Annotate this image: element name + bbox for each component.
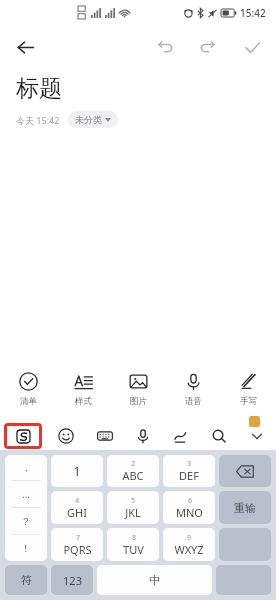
staticText: 符 [21, 573, 32, 587]
staticText: 重输 [234, 501, 256, 515]
staticText: ？ [21, 515, 31, 528]
button[interactable] [216, 565, 271, 595]
staticText: 9 [187, 533, 191, 542]
staticText: 6 [188, 496, 192, 505]
staticText: TUV [123, 542, 144, 557]
button[interactable]: 123 [51, 565, 93, 595]
button[interactable]: … [5, 481, 47, 507]
button[interactable]: 中 [97, 565, 212, 595]
staticText: 8 [132, 533, 136, 542]
button[interactable]: 6 [163, 491, 215, 524]
button[interactable]: 未分类 [68, 111, 118, 128]
button[interactable]: Keyboard layout [85, 422, 124, 450]
button[interactable]: 语音 [166, 362, 221, 416]
button[interactable]: Handwriting [162, 422, 200, 450]
button[interactable]: Undo [148, 31, 180, 63]
staticText: 语音 [185, 396, 202, 407]
button[interactable]: 7 [51, 528, 103, 561]
button[interactable]: Redo [192, 31, 224, 63]
staticText: 未分类 [75, 114, 102, 125]
button[interactable]: 重输 [219, 491, 271, 524]
button[interactable]: 4 [51, 491, 103, 524]
button[interactable]: Back [8, 30, 42, 64]
staticText: JKL [125, 505, 141, 520]
button[interactable]: 手写 [221, 362, 276, 416]
staticText: 图片 [130, 396, 147, 407]
button[interactable]: Done [236, 31, 268, 63]
staticText: ABC [122, 468, 144, 483]
button[interactable]: Emoji [46, 422, 85, 450]
button[interactable]: 5 [107, 491, 159, 524]
staticText: ！ [21, 542, 31, 555]
button[interactable]: ？ [5, 508, 47, 534]
staticText: 3 [187, 459, 191, 468]
button[interactable]: 图片 [111, 362, 166, 416]
staticText: 清单 [20, 396, 37, 407]
button[interactable] [219, 528, 271, 561]
button[interactable]: 2 [107, 455, 159, 487]
button[interactable]: Collapse keyboard [238, 422, 276, 450]
staticText: 1 [73, 462, 81, 480]
button[interactable]: ， [5, 455, 47, 480]
button[interactable]: Voice input [124, 422, 162, 450]
staticText: 今天 15:42 [16, 114, 60, 126]
button[interactable]: 清单 [0, 362, 56, 416]
staticText: 2 [131, 459, 135, 468]
button[interactable]: ！ [5, 535, 47, 561]
button[interactable]: 样式 [56, 362, 111, 416]
button[interactable]: 9 [163, 528, 215, 561]
staticText: 4 [75, 496, 79, 505]
staticText: 7 [76, 533, 80, 542]
staticText: ， [21, 461, 31, 474]
staticText: 123 [63, 573, 82, 588]
button[interactable]: 3 [163, 455, 215, 487]
staticText: 15:42 [240, 6, 266, 20]
button[interactable]: Search [200, 422, 238, 450]
staticText: 标题 [16, 74, 62, 103]
button[interactable]: Input method [7, 426, 39, 446]
staticText: PQRS [63, 542, 92, 557]
staticText: 样式 [75, 396, 92, 407]
button[interactable]: 8 [107, 528, 159, 561]
button[interactable]: 符 [5, 565, 47, 595]
staticText: 5 [131, 496, 135, 505]
staticText: WXYZ [174, 542, 204, 557]
button[interactable]: 1 [51, 455, 103, 487]
staticText: … [22, 487, 30, 501]
button[interactable] [219, 455, 271, 487]
staticText: DEF [179, 468, 199, 483]
staticText: 手写 [240, 396, 257, 407]
staticText: 中 [149, 573, 160, 587]
staticText: GHI [67, 505, 87, 520]
staticText: MNO [176, 505, 203, 520]
